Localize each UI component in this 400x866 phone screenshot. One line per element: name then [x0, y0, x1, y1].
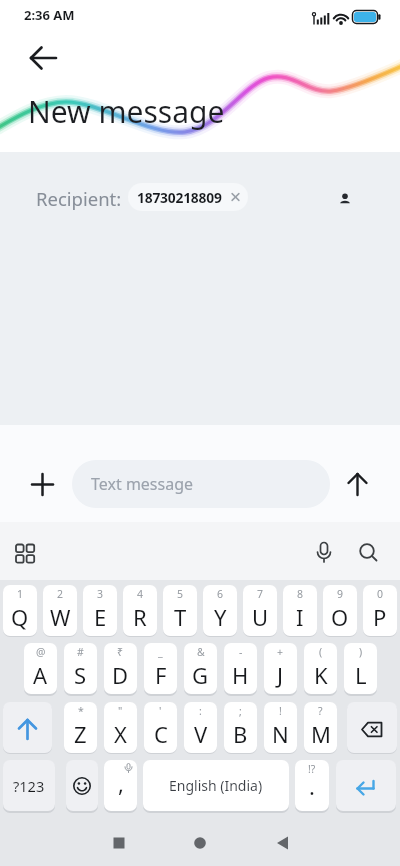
staticText: ,	[118, 768, 124, 798]
button[interactable]: 9	[323, 585, 357, 636]
button[interactable]	[185, 828, 215, 858]
button[interactable]	[353, 538, 383, 568]
staticText: #	[77, 645, 84, 659]
button[interactable]: _	[144, 643, 177, 694]
staticText: Z	[74, 719, 87, 749]
staticText: K	[314, 660, 328, 690]
staticText: D	[112, 660, 129, 690]
staticText: G	[192, 660, 209, 690]
staticText: A	[33, 660, 48, 690]
staticText: -	[239, 645, 243, 659]
button[interactable]: !?	[295, 760, 329, 811]
staticText: L	[355, 660, 367, 690]
staticText: !	[279, 704, 282, 718]
staticText: Recipient:	[36, 186, 122, 211]
button[interactable]: 2	[43, 585, 77, 636]
button[interactable]: 18730218809	[128, 183, 248, 211]
button[interactable]: #	[64, 643, 97, 694]
staticText: J	[277, 660, 284, 690]
button[interactable]: ;	[224, 702, 257, 753]
staticText: S	[74, 660, 87, 690]
staticText: T	[174, 602, 187, 632]
button[interactable]: @	[24, 643, 57, 694]
staticText: 5	[177, 587, 184, 601]
button[interactable]: 7	[243, 585, 277, 636]
button[interactable]: '	[144, 702, 177, 753]
staticText: Q	[11, 602, 29, 632]
staticText: :	[199, 704, 202, 718]
staticText: I	[296, 602, 304, 632]
staticText: P	[373, 602, 387, 632]
staticText: 1	[17, 587, 24, 601]
button[interactable]: 4	[123, 585, 157, 636]
button[interactable]: :	[184, 702, 217, 753]
button[interactable]: 5	[163, 585, 197, 636]
button[interactable]	[26, 468, 59, 501]
button[interactable]: ?123	[3, 760, 55, 811]
button[interactable]	[3, 702, 52, 753]
staticText: )	[359, 645, 363, 659]
button[interactable]: ,	[104, 760, 137, 811]
staticText: Y	[214, 602, 227, 632]
staticText: ;	[239, 704, 242, 718]
staticText: B	[233, 719, 248, 749]
staticText: M	[311, 719, 331, 749]
button[interactable]	[341, 468, 374, 501]
staticText: !?	[308, 762, 316, 776]
staticText: New message	[28, 91, 225, 132]
button[interactable]	[104, 828, 134, 858]
button[interactable]: 6	[203, 585, 237, 636]
button[interactable]: English (India)	[143, 760, 289, 811]
staticText: O	[331, 602, 349, 632]
button[interactable]: 0	[363, 585, 397, 636]
staticText: English (India)	[169, 776, 263, 795]
staticText: "	[118, 704, 123, 718]
button[interactable]: !	[264, 702, 297, 753]
staticText: X	[114, 719, 127, 749]
staticText: W	[50, 602, 71, 632]
staticText: H	[232, 660, 249, 690]
button[interactable]: &	[184, 643, 217, 694]
staticText: Text message	[91, 473, 194, 495]
staticText: 7	[257, 587, 264, 601]
button[interactable]: -	[224, 643, 257, 694]
button[interactable]: (	[304, 643, 337, 694]
staticText: F	[155, 660, 167, 690]
button[interactable]	[309, 538, 339, 568]
staticText: 0	[377, 587, 384, 601]
staticText: N	[272, 719, 289, 749]
staticText: @	[36, 645, 46, 659]
button[interactable]	[20, 40, 60, 76]
button[interactable]: ₹	[104, 643, 137, 694]
staticText: 3	[97, 587, 104, 601]
staticText: *	[78, 704, 84, 718]
staticText: '	[159, 704, 162, 718]
staticText: ₹	[117, 645, 124, 659]
staticText: 2:36 AM	[24, 6, 75, 24]
button[interactable]: 1	[3, 585, 37, 636]
button[interactable]	[333, 186, 357, 210]
button[interactable]	[66, 760, 98, 811]
button[interactable]: Text message	[72, 460, 330, 508]
button[interactable]: )	[344, 643, 377, 694]
staticText: 4	[137, 587, 144, 601]
button[interactable]	[267, 828, 297, 858]
staticText: 2	[57, 587, 64, 601]
button[interactable]: "	[104, 702, 137, 753]
button[interactable]: +	[264, 643, 297, 694]
staticText: ?	[318, 704, 323, 718]
button[interactable]	[347, 702, 397, 753]
staticText: ?123	[13, 776, 45, 796]
button[interactable]: *	[64, 702, 97, 753]
staticText: V	[194, 719, 208, 749]
button[interactable]: 3	[83, 585, 117, 636]
button[interactable]: 8	[283, 585, 317, 636]
button[interactable]	[336, 760, 396, 811]
staticText: (	[319, 645, 323, 659]
staticText: R	[133, 602, 147, 632]
button[interactable]: ?	[304, 702, 337, 753]
staticText: U	[252, 602, 269, 632]
staticText: E	[94, 602, 107, 632]
button[interactable]	[10, 539, 40, 569]
staticText: +	[277, 645, 284, 659]
